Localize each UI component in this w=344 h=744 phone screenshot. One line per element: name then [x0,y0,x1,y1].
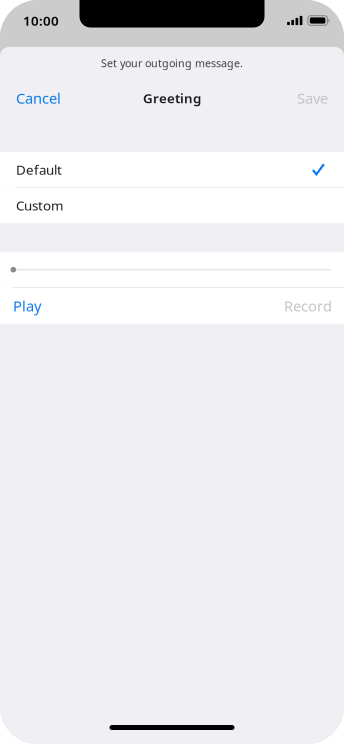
staticText: Greeting [143,89,201,107]
button[interactable]: Save [297,79,328,117]
button[interactable]: Default [0,152,344,187]
button[interactable]: Cancel [16,79,61,117]
staticText: Save [297,88,328,108]
staticText: 10:00 [23,12,59,29]
staticText: Set your outgoing message. [101,56,243,70]
staticText: Cancel [16,88,61,108]
staticText: Custom [16,197,63,214]
staticText: Default [16,161,62,178]
button[interactable]: Record [284,288,332,324]
button[interactable]: Play [13,288,41,324]
button[interactable]: Custom [0,188,344,223]
staticText: Record [284,296,332,316]
staticText: Play [13,296,41,316]
